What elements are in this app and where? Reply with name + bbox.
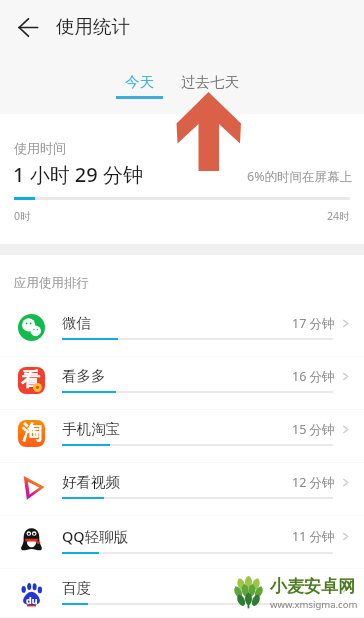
button[interactable]: 微信 (0, 304, 364, 357)
staticText: 16 分钟 (292, 368, 335, 385)
staticText: 6%的时间在屏幕上 (247, 168, 353, 185)
staticText: 使用统计 (56, 15, 130, 38)
staticText: 11 分钟 (292, 528, 335, 545)
staticText: 17 分钟 (292, 315, 335, 332)
staticText: du (26, 594, 38, 606)
staticText: 今天 (125, 73, 154, 91)
button[interactable]: QQ轻聊版 (0, 516, 364, 569)
staticText: www.xmsigma.com (270, 598, 358, 611)
staticText: 应用使用排行 (14, 275, 89, 291)
staticText: 过去七天 (181, 73, 239, 91)
button[interactable]: du (0, 569, 364, 618)
button[interactable]: 过去七天 (172, 73, 248, 99)
staticText: 好看视频 (62, 473, 120, 491)
button[interactable]: 今天 (109, 73, 170, 99)
staticText: 淘 (22, 420, 42, 445)
staticText: 15 分钟 (292, 421, 335, 438)
staticText: 小麦安卓网 (270, 576, 355, 597)
button[interactable]: 好看视频 (0, 463, 364, 516)
staticText: 看 (21, 368, 40, 392)
staticText: 使用时间 (14, 140, 66, 156)
staticText: QQ轻聊版 (62, 526, 129, 546)
staticText: 手机淘宝 (62, 420, 120, 438)
button[interactable]: 看 (0, 357, 364, 410)
staticText: 百度 (62, 579, 91, 597)
staticText: 看多多 (62, 367, 106, 385)
staticText: 0时 (14, 209, 31, 223)
staticText: 微信 (62, 314, 91, 332)
staticText: 1 小时 29 分钟 (13, 161, 143, 188)
staticText: 24时 (327, 209, 350, 223)
button[interactable]: 淘 (0, 410, 364, 463)
button[interactable]: Back (5, 4, 51, 50)
staticText: 12 分钟 (292, 474, 335, 491)
